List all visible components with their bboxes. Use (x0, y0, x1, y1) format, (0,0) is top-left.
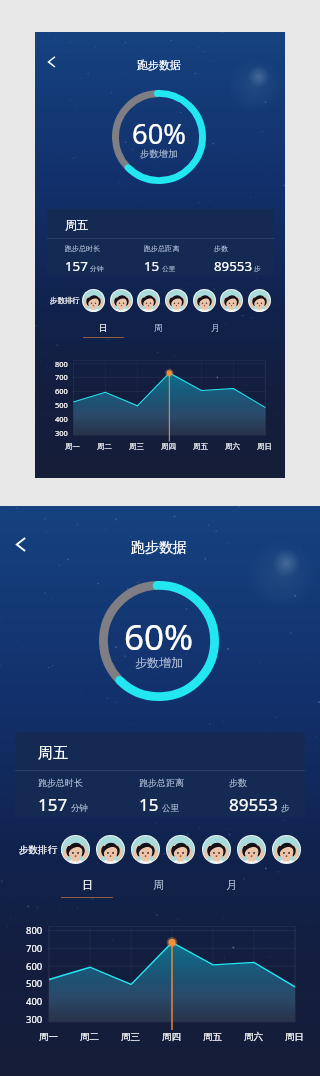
staticText: 周六 (244, 1031, 263, 1043)
staticText: 周三 (121, 1031, 140, 1043)
button[interactable]: Runner 4 (165, 289, 188, 312)
staticText: 步 (254, 265, 261, 273)
staticText: 周五 (203, 1031, 222, 1043)
button[interactable]: Back (6, 528, 40, 562)
staticText: 周日 (257, 442, 272, 451)
button[interactable]: Runner 7 (248, 289, 271, 312)
staticText: 步数排行： (50, 296, 88, 305)
button[interactable]: Runner 1 (61, 835, 90, 864)
staticText: 周五 (38, 744, 68, 763)
staticText: 跑步数据 (137, 58, 181, 72)
staticText: 15 (144, 257, 160, 275)
staticText: 157 (65, 257, 88, 275)
button[interactable]: Runner 3 (131, 835, 160, 864)
staticText: 500 (26, 977, 43, 990)
staticText: 跑步总时长 (38, 777, 83, 788)
staticText: 157 (38, 793, 68, 816)
staticText: 800 (26, 924, 43, 937)
button[interactable]: Runner 7 (272, 835, 301, 864)
staticText: 60% (124, 613, 194, 661)
staticText: 周一 (65, 442, 80, 451)
staticText: 400 (55, 414, 68, 424)
button[interactable]: Runner 4 (166, 835, 195, 864)
staticText: 周四 (162, 1031, 181, 1043)
staticText: 步数增加 (135, 655, 183, 670)
staticText: 周五 (65, 218, 89, 233)
staticText: 300 (26, 1013, 43, 1026)
staticText: 700 (26, 942, 43, 955)
button[interactable]: Runner 3 (137, 289, 160, 312)
staticText: 跑步数据 (131, 539, 187, 557)
staticText: 跑步总距离 (144, 244, 180, 253)
staticText: 公里 (162, 265, 176, 273)
button[interactable]: Runner 2 (96, 835, 125, 864)
staticText: 周一 (39, 1031, 58, 1043)
button[interactable]: Runner 2 (110, 289, 133, 312)
staticText: 分钟 (90, 265, 104, 273)
button[interactable]: Runner 5 (202, 835, 231, 864)
staticText: 周二 (97, 442, 112, 451)
staticText: 跑步总时长 (65, 244, 101, 253)
staticText: 周六 (225, 442, 240, 451)
staticText: 周 (154, 323, 163, 334)
staticText: 跑步总距离 (139, 777, 184, 788)
button[interactable]: Runner 6 (220, 289, 243, 312)
staticText: 89553 (229, 793, 278, 816)
staticText: 步数排行： (19, 844, 67, 856)
staticText: 公里 (162, 803, 179, 814)
staticText: 步 (281, 803, 290, 814)
button[interactable]: Back (40, 49, 67, 76)
staticText: 800 (55, 359, 68, 369)
staticText: 89553 (214, 257, 252, 275)
staticText: 60% (132, 115, 187, 152)
staticText: 周四 (161, 442, 176, 451)
staticText: 周三 (129, 442, 144, 451)
staticText: 周日 (285, 1031, 304, 1043)
staticText: 400 (26, 995, 43, 1008)
button[interactable]: Runner 5 (193, 289, 216, 312)
button[interactable]: 月 (194, 321, 236, 341)
staticText: 600 (55, 386, 68, 396)
staticText: 月 (226, 878, 237, 892)
staticText: 周五 (193, 442, 208, 451)
staticText: 600 (26, 960, 43, 973)
button[interactable]: 日 (60, 876, 114, 902)
staticText: 步数 (229, 777, 247, 788)
staticText: 周 (153, 878, 164, 892)
staticText: 日 (82, 878, 93, 892)
staticText: 500 (55, 400, 68, 410)
staticText: 700 (55, 372, 68, 382)
button[interactable]: 周五 (15, 732, 305, 817)
button[interactable]: 月 (204, 876, 258, 902)
staticText: 15 (139, 793, 159, 816)
button[interactable]: 周五 (47, 209, 274, 275)
button[interactable]: 周 (131, 876, 185, 902)
staticText: 300 (55, 428, 68, 438)
staticText: 步数增加 (140, 148, 178, 160)
staticText: 步数 (214, 244, 229, 253)
staticText: 月 (211, 323, 220, 334)
button[interactable]: 日 (82, 321, 124, 341)
button[interactable]: 周 (137, 321, 179, 341)
staticText: 周二 (80, 1031, 99, 1043)
button[interactable]: Runner 1 (82, 289, 105, 312)
staticText: 分钟 (71, 803, 88, 814)
button[interactable]: Runner 6 (237, 835, 266, 864)
staticText: 日 (99, 323, 108, 334)
